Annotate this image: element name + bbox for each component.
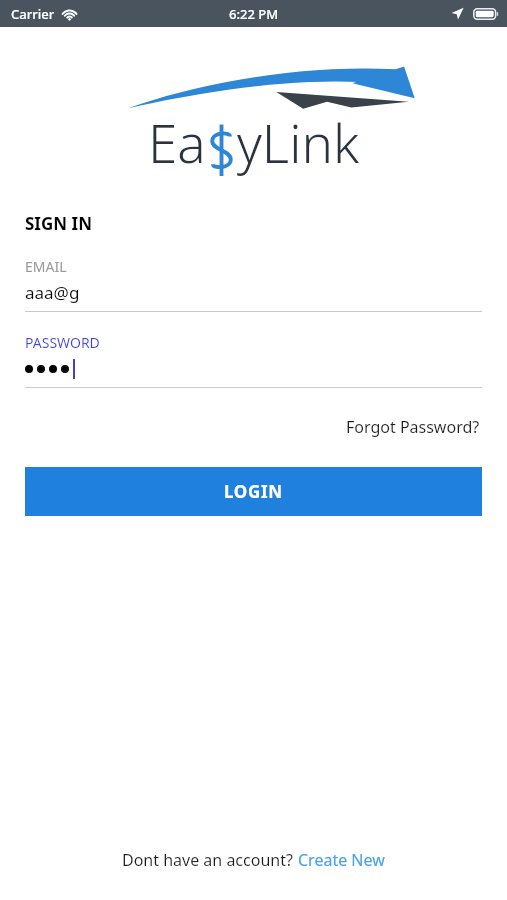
staticText: Create New <box>298 849 385 871</box>
staticText: Forgot Password? <box>346 416 480 438</box>
button[interactable]: Forgot Password? <box>344 411 482 443</box>
staticText: yLink <box>237 106 360 178</box>
staticText: Ea <box>148 106 206 178</box>
staticText: SIGN IN <box>25 212 92 235</box>
staticText: aaa@g <box>25 281 80 304</box>
staticText: Carrier <box>11 5 55 23</box>
button[interactable]: PASSWORD <box>25 333 482 388</box>
staticText: LOGIN <box>224 480 283 503</box>
button[interactable]: EMAIL <box>25 257 482 312</box>
staticText: EMAIL <box>25 257 67 276</box>
staticText: 6:22 PM <box>229 5 279 23</box>
staticText: Dont have an account? <box>122 849 298 871</box>
staticText: PASSWORD <box>25 333 100 352</box>
button[interactable]: LOGIN <box>25 467 482 516</box>
button[interactable]: Dont have an account? <box>114 843 393 877</box>
